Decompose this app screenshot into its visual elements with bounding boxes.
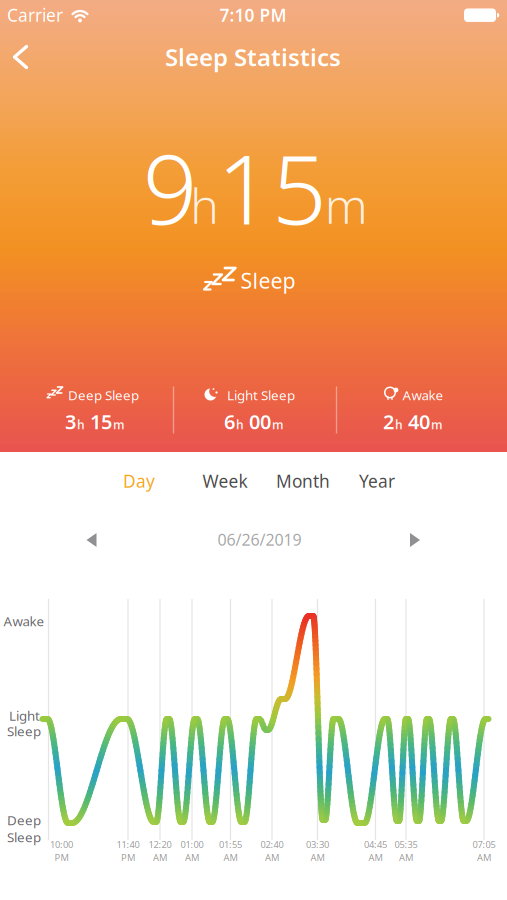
staticText: Awake bbox=[3, 612, 44, 630]
staticText: 06/26/2019 bbox=[217, 529, 301, 550]
button[interactable]: Previous day bbox=[82, 530, 102, 550]
button[interactable]: Year bbox=[359, 469, 395, 492]
staticText: 00 bbox=[249, 408, 271, 435]
staticText: Sleep bbox=[7, 828, 41, 846]
staticText: 12:20 bbox=[148, 838, 171, 851]
staticText: 03:30 bbox=[306, 838, 329, 851]
staticText: AM bbox=[399, 851, 413, 864]
staticText: PM bbox=[121, 851, 135, 864]
staticText: Carrier bbox=[7, 3, 63, 26]
staticText: 10:00 bbox=[50, 838, 73, 851]
button[interactable]: Day bbox=[123, 469, 155, 492]
staticText: 15 bbox=[90, 408, 112, 435]
staticText: h bbox=[190, 173, 219, 237]
staticText: 04:45 bbox=[364, 838, 387, 851]
staticText: Light Sleep bbox=[227, 386, 295, 404]
button[interactable]: Back bbox=[2, 35, 46, 79]
staticText: Sleep bbox=[240, 266, 295, 295]
staticText: 11:40 bbox=[116, 838, 139, 851]
staticText: AM bbox=[310, 851, 324, 864]
staticText: 07:05 bbox=[472, 838, 495, 851]
staticText: Month bbox=[276, 469, 330, 492]
staticText: Awake bbox=[402, 386, 443, 404]
staticText: 7:10 PM bbox=[219, 3, 286, 26]
button[interactable]: Month bbox=[276, 469, 330, 492]
staticText: Deep bbox=[7, 811, 41, 829]
staticText: AM bbox=[265, 851, 279, 864]
staticText: Sleep Statistics bbox=[165, 41, 341, 73]
staticText: m bbox=[113, 417, 125, 432]
staticText: 02:40 bbox=[260, 838, 283, 851]
staticText: AM bbox=[185, 851, 199, 864]
staticText: h bbox=[236, 417, 244, 432]
staticText: 3 bbox=[65, 408, 76, 435]
staticText: 40 bbox=[408, 408, 430, 435]
staticText: h bbox=[395, 417, 403, 432]
staticText: 9 bbox=[143, 124, 198, 251]
staticText: 6 bbox=[224, 408, 235, 435]
staticText: Day bbox=[123, 469, 155, 492]
staticText: 01:55 bbox=[219, 838, 242, 851]
staticText: PM bbox=[54, 851, 68, 864]
staticText: AM bbox=[153, 851, 167, 864]
staticText: m bbox=[431, 417, 443, 432]
staticText: Deep Sleep bbox=[68, 386, 139, 404]
staticText: 01:00 bbox=[180, 838, 203, 851]
staticText: 2 bbox=[383, 408, 394, 435]
staticText: AM bbox=[368, 851, 382, 864]
staticText: Light bbox=[9, 707, 40, 724]
button[interactable]: Week bbox=[202, 469, 247, 492]
staticText: Week bbox=[202, 469, 247, 492]
staticText: m bbox=[325, 173, 368, 237]
staticText: h bbox=[77, 417, 85, 432]
staticText: AM bbox=[477, 851, 491, 864]
staticText: Sleep bbox=[7, 722, 41, 740]
staticText: 15 bbox=[217, 124, 327, 251]
staticText: 05:35 bbox=[394, 838, 417, 851]
staticText: Year bbox=[359, 469, 395, 492]
staticText: AM bbox=[223, 851, 237, 864]
button[interactable]: Next day bbox=[404, 530, 424, 550]
staticText: m bbox=[272, 417, 284, 432]
